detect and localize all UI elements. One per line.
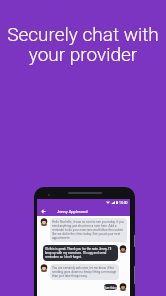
button[interactable]: Contact avatar bbox=[40, 218, 48, 226]
staticText: Hello Rochelle, it was so nice to see yo… bbox=[52, 220, 125, 240]
staticText: Securely chat with your provider bbox=[0, 23, 166, 65]
button[interactable]: Sure thing bbox=[104, 284, 117, 290]
button[interactable]: Hello Rochelle, it was so nice to see yo… bbox=[50, 218, 127, 242]
button[interactable]: Contact avatar bbox=[119, 245, 127, 253]
staticText: Ok this is great. Thank you for the note… bbox=[45, 247, 116, 259]
button[interactable]: Contact avatar bbox=[119, 283, 127, 291]
button[interactable]: Back bbox=[40, 208, 46, 214]
staticText: Sure thing bbox=[104, 286, 117, 289]
button[interactable]: Contact avatar bbox=[40, 264, 48, 272]
staticText: 10:30 bbox=[119, 201, 128, 205]
button[interactable]: Ok this is great. Thank you for the note… bbox=[43, 245, 118, 261]
button[interactable]: You are certainly welcome, let me know i… bbox=[50, 264, 119, 280]
staticText: You are certainly welcome, let me know i… bbox=[52, 266, 117, 278]
staticText: Jenny Appleseed bbox=[57, 209, 88, 214]
